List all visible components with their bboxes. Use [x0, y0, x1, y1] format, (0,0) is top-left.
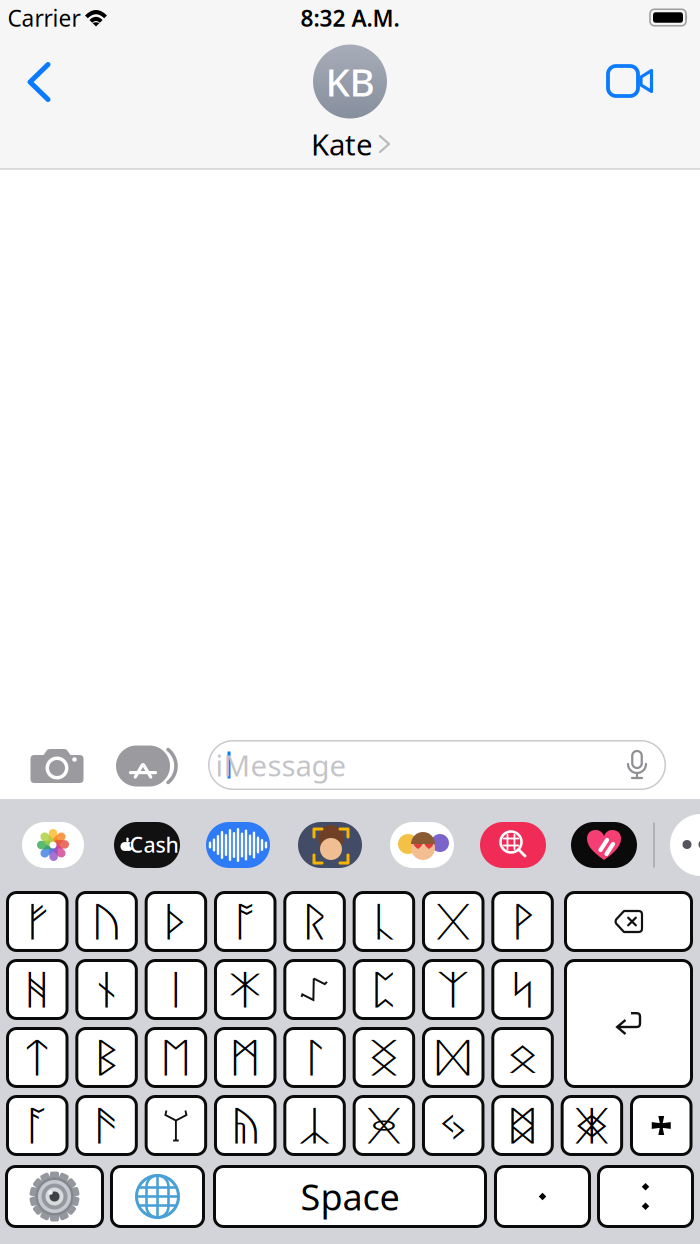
- staticText: ᛏ: [25, 1039, 49, 1079]
- staticText: ᚷ: [441, 903, 465, 943]
- staticText: KB: [325, 56, 374, 107]
- button[interactable]: ᛡ: [214, 959, 276, 1020]
- button[interactable]: Next keyboard: [110, 1165, 205, 1228]
- button[interactable]: Colon: [597, 1165, 694, 1228]
- staticText: ᛣ: [303, 1107, 327, 1147]
- staticText: ᛝ: [372, 1039, 396, 1079]
- button[interactable]: ᚥ: [214, 1095, 276, 1156]
- staticText: ᚫ: [95, 1107, 119, 1147]
- button[interactable]: ᛈ: [353, 959, 415, 1020]
- button[interactable]: ᛁ: [145, 959, 207, 1020]
- button[interactable]: ᛋ: [491, 959, 554, 1020]
- button[interactable]: Photos: [22, 822, 84, 868]
- button[interactable]: ᚦ: [145, 891, 207, 952]
- button[interactable]: Rune yr: [145, 1095, 207, 1156]
- button[interactable]: ᛉ: [422, 959, 484, 1020]
- button[interactable]: FaceTime: [600, 59, 660, 103]
- staticText: 8:32 A.M.: [300, 3, 399, 33]
- button[interactable]: ᛞ: [422, 1027, 484, 1088]
- staticText: ᛗ: [233, 1039, 257, 1079]
- staticText: ᛃ: [441, 1107, 465, 1147]
- button[interactable]: ᚾ: [75, 959, 138, 1020]
- button[interactable]: ᚢ: [75, 891, 138, 952]
- button[interactable]: KB: [311, 44, 389, 163]
- button[interactable]: ᛗ: [214, 1027, 276, 1088]
- staticText: ᚪ: [25, 1107, 49, 1147]
- staticText: ᚩ: [233, 903, 257, 943]
- staticText: ᛖ: [164, 1039, 188, 1079]
- button[interactable]: Animoji Stickers: [390, 822, 454, 868]
- button[interactable]: Apple Cash: [114, 822, 180, 868]
- button[interactable]: Memoji: [298, 822, 362, 868]
- button[interactable]: ᚩ: [214, 891, 276, 952]
- button[interactable]: ᚷ: [422, 891, 484, 952]
- button[interactable]: ᚻ: [6, 959, 68, 1020]
- button[interactable]: ᛏ: [6, 1027, 68, 1088]
- button[interactable]: Return: [564, 959, 693, 1088]
- staticText: ᛞ: [441, 1039, 465, 1079]
- button[interactable]: ᛥ: [491, 1095, 554, 1156]
- staticText: ᛚ: [303, 1039, 327, 1079]
- staticText: ᚦ: [164, 903, 188, 943]
- button[interactable]: ᛒ: [75, 1027, 138, 1088]
- staticText: Cash: [129, 830, 178, 859]
- staticText: ᚥ: [233, 1107, 257, 1147]
- button[interactable]: Music: [206, 822, 270, 868]
- button[interactable]: Single dot: [494, 1165, 591, 1228]
- button[interactable]: Delete: [564, 891, 693, 952]
- staticText: Carrier: [7, 3, 80, 33]
- button[interactable]: ᛖ: [145, 1027, 207, 1088]
- staticText: ᚸ: [372, 1107, 396, 1147]
- staticText: ᛥ: [511, 1107, 535, 1147]
- staticText: Kate: [311, 124, 373, 163]
- staticText: ᛉ: [441, 971, 465, 1011]
- button[interactable]: ᛃ: [422, 1095, 484, 1156]
- button[interactable]: ᚠ: [6, 891, 68, 952]
- staticText: ᛤ: [580, 1107, 604, 1147]
- button[interactable]: Rune eoh: [283, 959, 346, 1020]
- button[interactable]: ᚫ: [75, 1095, 138, 1156]
- button[interactable]: Settings: [5, 1165, 104, 1228]
- staticText: ᛁ: [164, 971, 188, 1011]
- button[interactable]: Back: [17, 57, 61, 107]
- staticText: ᚳ: [372, 903, 396, 943]
- button[interactable]: Digital Touch: [571, 822, 637, 868]
- button[interactable]: Cross: [630, 1095, 692, 1156]
- button[interactable]: Camera: [29, 746, 85, 786]
- staticText: Space: [300, 1173, 399, 1220]
- button[interactable]: ᛚ: [283, 1027, 346, 1088]
- staticText: ᛋ: [511, 971, 535, 1011]
- button[interactable]: ᚱ: [283, 891, 346, 952]
- staticText: ᛈ: [372, 971, 396, 1011]
- staticText: ᛟ: [511, 1039, 535, 1079]
- button[interactable]: #images: [480, 822, 546, 868]
- staticText: ᛡ: [233, 971, 257, 1011]
- button[interactable]: ᚪ: [6, 1095, 68, 1156]
- button[interactable]: Space: [213, 1165, 487, 1228]
- button[interactable]: More apps: [670, 814, 700, 876]
- button[interactable]: ᚳ: [353, 891, 415, 952]
- staticText: ᚢ: [95, 903, 119, 943]
- staticText: ᚻ: [25, 971, 49, 1011]
- staticText: ᚱ: [303, 903, 327, 943]
- button[interactable]: iMessage text field: [208, 740, 666, 790]
- staticText: ᚹ: [511, 903, 535, 943]
- button[interactable]: ᛣ: [283, 1095, 346, 1156]
- staticText: ᚾ: [95, 971, 119, 1011]
- button[interactable]: ᚸ: [353, 1095, 415, 1156]
- button[interactable]: iMessage apps: [117, 746, 179, 786]
- button[interactable]: ᛝ: [353, 1027, 415, 1088]
- button[interactable]: ᚹ: [491, 891, 554, 952]
- button[interactable]: ᛟ: [491, 1027, 554, 1088]
- staticText: iMessage: [215, 745, 346, 784]
- button[interactable]: ᛤ: [561, 1095, 623, 1156]
- staticText: ᚠ: [25, 903, 49, 943]
- staticText: ᛒ: [95, 1039, 119, 1079]
